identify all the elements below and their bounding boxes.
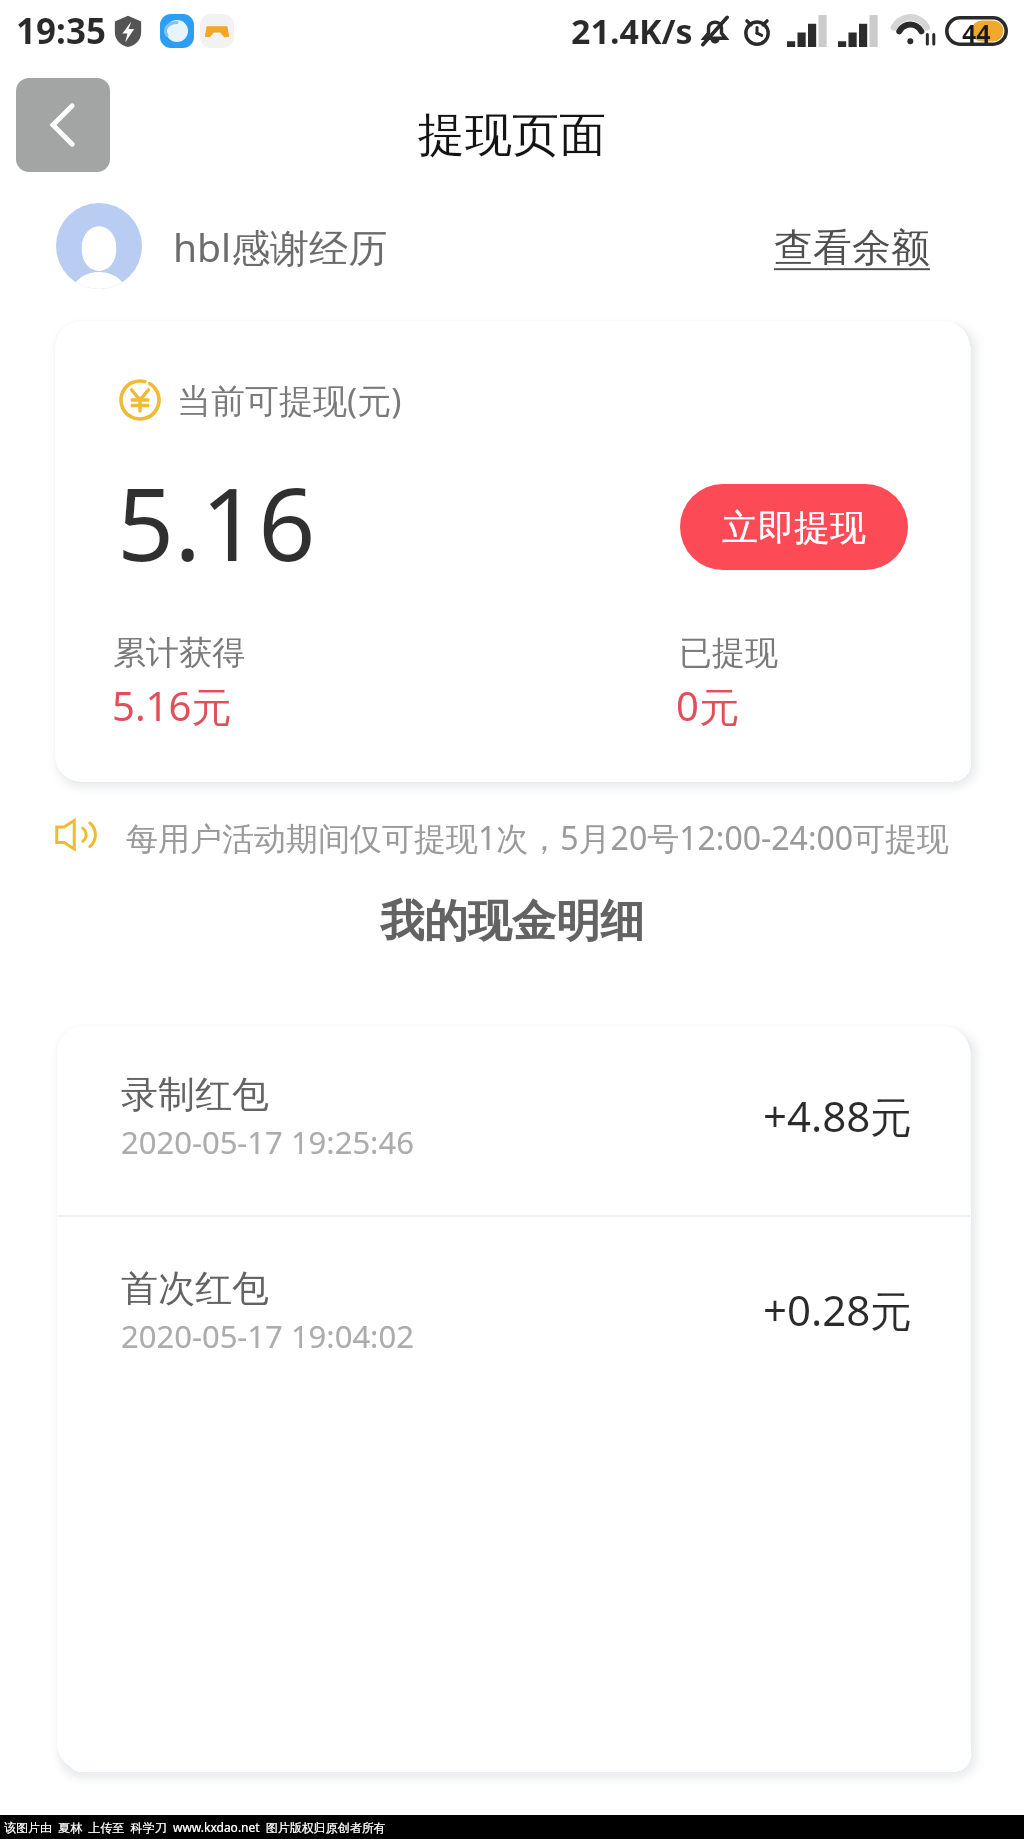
staticText: 21.4K/s [571,8,693,54]
staticText: 44 [962,16,991,46]
staticText: 5.16元 [112,678,232,733]
button[interactable]: Back [16,78,110,172]
button[interactable]: 首次红包 [57,1217,970,1412]
staticText: 已提现 [679,632,778,674]
staticText: 0元 [676,678,739,733]
staticText: 5.16 [117,454,316,590]
staticText: 每用户活动期间仅可提现1次，5月20号12:00-24:00可提现 [126,816,950,860]
staticText: hbl感谢经历 [173,220,388,273]
staticText: +0.28元 [763,1281,913,1338]
staticText: 19:35 [16,7,106,55]
button[interactable]: 立即提现 [680,484,908,570]
staticText: 2020-05-17 19:04:02 [121,1315,414,1357]
staticText: 该图片由 夏林 上传至 科学刀 www.kxdao.net 图片版权归原创者所有 [4,1819,386,1835]
staticText: 当前可提现(元) [177,377,402,423]
button[interactable]: 查看余额 [762,213,942,282]
staticText: 首次红包 [121,1265,269,1312]
staticText: 我的现金明细 [380,894,644,949]
staticText: 立即提现 [722,505,866,550]
staticText: +4.88元 [763,1087,913,1144]
staticText: 录制红包 [121,1071,269,1118]
staticText: 提现页面 [418,106,606,165]
staticText: 累计获得 [113,632,245,674]
staticText: 查看余额 [774,223,930,272]
button[interactable]: 录制红包 [57,1026,970,1215]
button[interactable]: hbl感谢经历 [56,203,388,289]
staticText: 2020-05-17 19:25:46 [121,1121,414,1163]
